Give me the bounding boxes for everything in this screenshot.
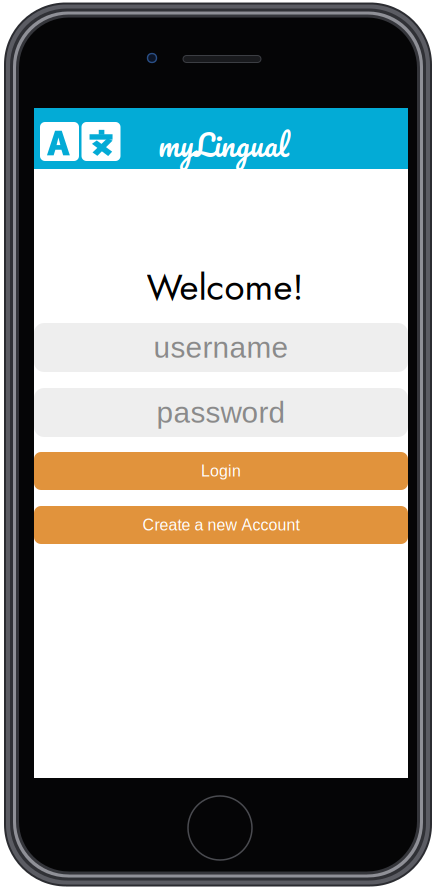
staticText: Login xyxy=(201,462,241,480)
staticText: username xyxy=(153,331,288,364)
staticText: myLingual xyxy=(158,119,289,170)
staticText: password xyxy=(156,396,285,429)
button[interactable]: Translate xyxy=(34,108,158,169)
button[interactable]: Create a new Account xyxy=(34,506,408,544)
staticText: Welcome! xyxy=(146,260,303,313)
button[interactable]: Login xyxy=(34,452,408,490)
staticText: Create a new Account xyxy=(142,516,299,534)
